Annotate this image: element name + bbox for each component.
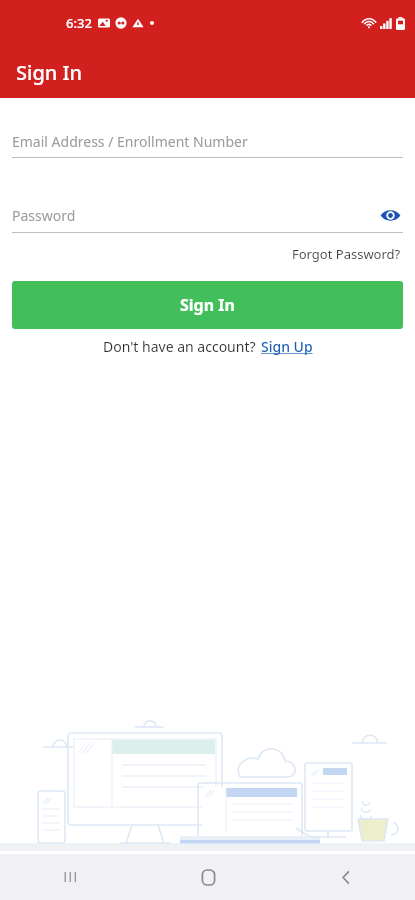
button[interactable]: Password — [12, 202, 403, 233]
staticText: Sign In — [16, 59, 83, 86]
button[interactable]: Email Address / Enrollment Number — [12, 132, 403, 158]
staticText: Don't have an account? — [103, 337, 256, 356]
button[interactable]: Show password — [377, 202, 403, 228]
button[interactable]: Sign Up — [261, 337, 313, 356]
button[interactable]: Home — [139, 854, 277, 900]
staticText: Sign In — [180, 294, 235, 316]
staticText: Sign Up — [261, 337, 313, 356]
staticText: Email Address / Enrollment Number — [12, 132, 248, 151]
staticText: 6:32 — [66, 14, 92, 32]
button[interactable]: Back — [277, 854, 415, 900]
button[interactable]: Forgot Password? — [290, 243, 403, 265]
staticText: Password — [12, 206, 377, 225]
button[interactable]: Recent apps — [0, 854, 139, 900]
button[interactable]: Sign In — [12, 281, 403, 329]
staticText: Forgot Password? — [292, 245, 401, 263]
